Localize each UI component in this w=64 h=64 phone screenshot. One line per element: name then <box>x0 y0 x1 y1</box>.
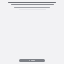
button[interactable]: Continue <box>19 59 45 62</box>
